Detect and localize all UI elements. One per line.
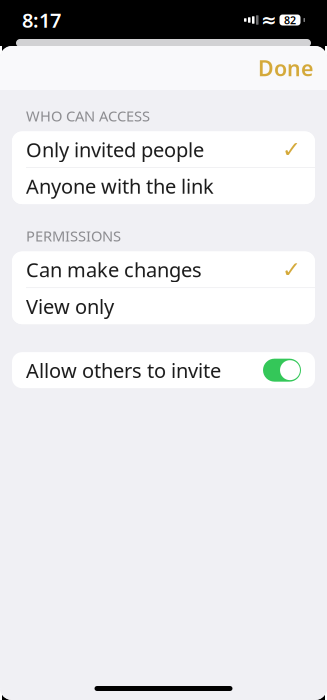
button[interactable]: Done	[244, 44, 327, 92]
staticText: ✓	[282, 257, 301, 282]
staticText: Allow others to invite	[26, 357, 221, 383]
staticText: View only	[26, 293, 114, 319]
staticText: Done	[258, 54, 313, 82]
button[interactable]: Allow others to invite	[0, 352, 327, 388]
button[interactable]: View only	[12, 288, 315, 324]
staticText: ≈	[261, 9, 277, 31]
staticText: Anyone with the link	[26, 173, 214, 199]
staticText: WHO CAN ACCESS	[26, 106, 150, 125]
button[interactable]: Anyone with the link	[12, 168, 315, 204]
button[interactable]: Only invited people	[12, 131, 315, 167]
staticText: 82	[284, 13, 296, 27]
staticText: Only invited people	[26, 136, 204, 163]
button[interactable]: Can make changes	[12, 252, 315, 288]
staticText: PERMISSIONS	[26, 226, 121, 246]
staticText: 8:17	[22, 7, 61, 33]
staticText: Can make changes	[26, 256, 202, 283]
staticText: ✓	[282, 137, 301, 162]
